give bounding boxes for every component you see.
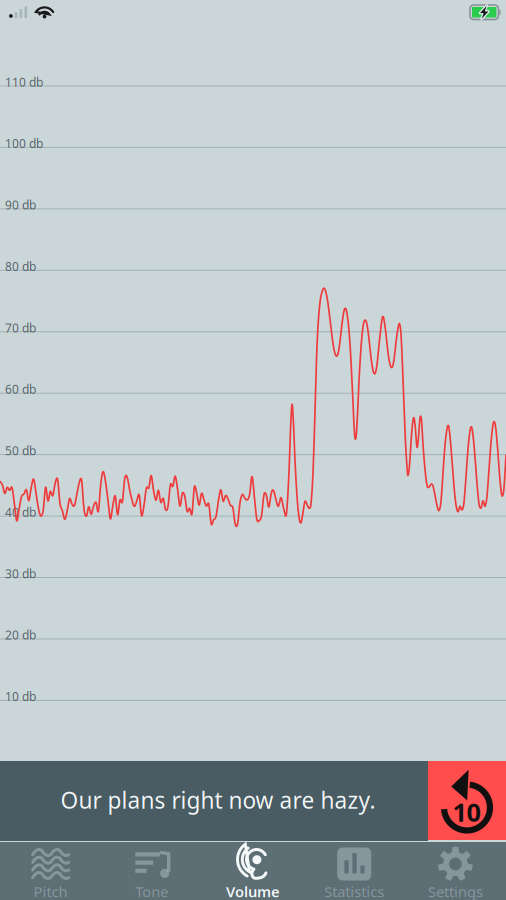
staticText: 80 db [5,258,36,274]
button[interactable]: Settings [405,842,506,900]
staticText: 20 db [5,627,36,643]
button[interactable]: Volume [202,842,304,900]
button[interactable]: Pitch [0,842,101,900]
staticText: 30 db [5,566,36,581]
staticText: 10 db [5,688,36,704]
staticText: Settings [428,882,483,900]
button[interactable]: Replay last 10 seconds [428,761,506,840]
staticText: Tone [135,882,168,900]
staticText: 90 db [5,197,36,213]
button[interactable]: Statistics [304,842,405,900]
staticText: 40 db [5,504,36,520]
staticText: 100 db [5,135,43,151]
staticText: Pitch [34,882,68,900]
staticText: Statistics [324,882,384,900]
staticText: 10 [452,795,480,829]
staticText: Volume [226,882,280,900]
staticText: Our plans right now are hazy. [60,785,375,815]
staticText: 60 db [5,381,36,397]
staticText: 110 db [5,74,43,90]
staticText: 50 db [5,443,36,459]
staticText: 70 db [5,320,36,336]
button[interactable]: Tone [101,842,202,900]
